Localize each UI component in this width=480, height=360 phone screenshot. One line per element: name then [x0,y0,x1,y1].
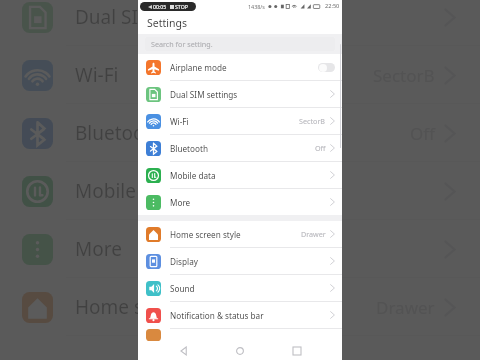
button[interactable]: Display [138,248,342,275]
staticText: Dual SIM [75,4,444,30]
staticText: Home screen style [170,229,301,240]
staticText: 22:50 [325,2,340,10]
button[interactable]: 00:05 [140,2,196,11]
staticText: Bluetooth [75,120,410,146]
staticText: Wi-Fi [170,116,299,127]
staticText: Search for setting. [151,39,213,49]
staticText: Mobile data [170,170,330,181]
button[interactable] [318,63,335,72]
button[interactable]: Sound [138,275,342,302]
button[interactable]: Bluetooth [138,135,342,162]
staticText: Display [170,256,330,267]
staticText: Sound [170,283,330,294]
button[interactable]: Home screen style [138,221,342,248]
staticText: More [170,197,330,208]
button[interactable]: Back [173,341,195,360]
staticText: Home s [75,294,376,320]
staticText: 1438/s [248,3,265,10]
staticText: STOP [175,3,188,10]
staticText: Notification & status bar [170,310,330,321]
button[interactable]: Notification & status bar [138,302,342,329]
staticText: Wi-Fi [75,62,373,88]
button[interactable]: Airplane mode [138,54,342,81]
staticText: SectorB [299,116,326,126]
button[interactable]: Mobile data [138,162,342,189]
button[interactable]: Recent apps [286,341,308,360]
button[interactable]: Wi-Fi [138,108,342,135]
staticText: More [75,236,444,262]
button[interactable]: Dual SIM settings [138,81,342,108]
staticText: Off [315,143,326,153]
staticText: Airplane mode [170,62,318,73]
button[interactable]: More [138,189,342,215]
staticText: Bluetooth [170,143,315,154]
button[interactable]: Home [229,341,251,360]
staticText: Drawer [301,229,326,239]
staticText: Mobile [75,178,444,204]
staticText: Settings [147,16,187,30]
staticText: 00:05 [153,3,167,10]
staticText: Dual SIM settings [170,89,330,100]
button[interactable]: Search for setting. [145,37,335,51]
